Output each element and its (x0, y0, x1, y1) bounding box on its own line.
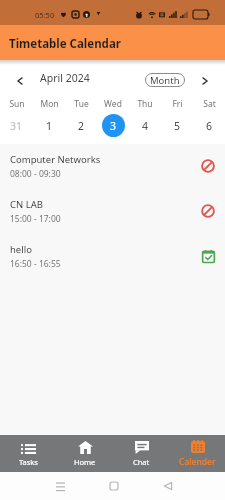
staticText: April 2024 (40, 71, 90, 85)
staticText: Home (74, 457, 96, 467)
button[interactable]: Next month (196, 72, 214, 90)
staticText: Calender (179, 456, 216, 468)
button[interactable]: hello (0, 234, 225, 279)
staticText: Tasks (19, 457, 38, 467)
button[interactable]: 1 (38, 114, 61, 137)
button[interactable]: 31 (5, 114, 28, 137)
staticText: Sat (203, 98, 216, 110)
button[interactable]: Back (157, 481, 178, 491)
staticText: 5 (174, 119, 181, 133)
button[interactable]: 2 (70, 114, 93, 137)
staticText: Timetable Calendar (9, 36, 121, 52)
staticText: 4 (142, 119, 149, 133)
button[interactable]: Month (145, 73, 185, 87)
button[interactable]: 4 (134, 114, 157, 137)
staticText: 2 (78, 119, 85, 133)
staticText: Thu (137, 98, 153, 110)
staticText: Mon (40, 98, 59, 110)
button[interactable]: Home (57, 435, 113, 472)
button[interactable]: Recent apps (50, 481, 71, 491)
staticText: hello (10, 243, 32, 256)
staticText: Chat (133, 457, 150, 467)
button[interactable]: Chat (113, 435, 169, 472)
staticText: 08:00 - 09:30 (10, 168, 61, 180)
button[interactable]: Home (103, 481, 124, 491)
staticText: 1 (46, 119, 53, 133)
button[interactable]: Tasks (0, 435, 57, 472)
staticText: 3 (110, 119, 117, 133)
staticText: Sun (9, 98, 25, 110)
staticText: Tue (74, 98, 89, 110)
button[interactable]: 6 (198, 114, 221, 137)
staticText: Month (150, 74, 180, 87)
staticText: Computer Networks (10, 153, 101, 166)
staticText: 31 (10, 119, 23, 133)
staticText: 6 (206, 119, 213, 133)
button[interactable]: CN LAB (0, 189, 225, 234)
staticText: 05:50 (35, 10, 55, 20)
staticText: Wed (104, 98, 122, 110)
staticText: Fri (172, 98, 183, 110)
button[interactable]: 3 (102, 114, 125, 137)
button[interactable]: Calender (169, 435, 225, 472)
staticText: 16:50 - 16:55 (10, 258, 61, 270)
button[interactable]: Blocked (198, 201, 218, 221)
staticText: 15:00 - 17:00 (10, 213, 61, 225)
button[interactable]: Scheduled (198, 246, 218, 266)
staticText: CN LAB (10, 198, 43, 211)
button[interactable]: Computer Networks (0, 144, 225, 189)
button[interactable]: Blocked (198, 156, 218, 176)
button[interactable]: Previous month (11, 72, 29, 90)
button[interactable]: 5 (166, 114, 189, 137)
